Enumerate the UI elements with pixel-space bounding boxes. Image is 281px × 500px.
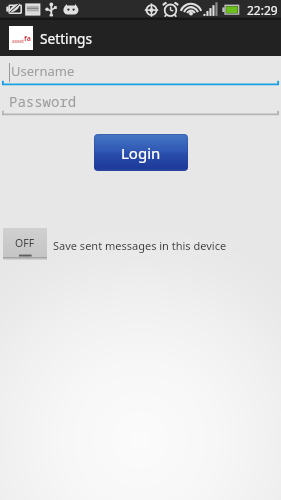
button[interactable]: App icon — [9, 26, 33, 50]
staticText: Save sent messages in this device — [53, 238, 227, 253]
button[interactable]: Password — [0, 88, 281, 116]
staticText: Username — [11, 62, 75, 80]
staticText: Login — [121, 143, 161, 163]
staticText: Password — [9, 92, 77, 111]
staticText: OFF — [15, 236, 35, 250]
staticText: asset — [12, 38, 24, 44]
button[interactable]: OFF — [3, 228, 47, 260]
button[interactable]: Username — [0, 58, 281, 86]
button[interactable]: Login — [94, 134, 188, 171]
staticText: 22:29 — [247, 2, 278, 18]
staticText: fa — [24, 34, 31, 44]
staticText: Settings — [40, 29, 93, 48]
